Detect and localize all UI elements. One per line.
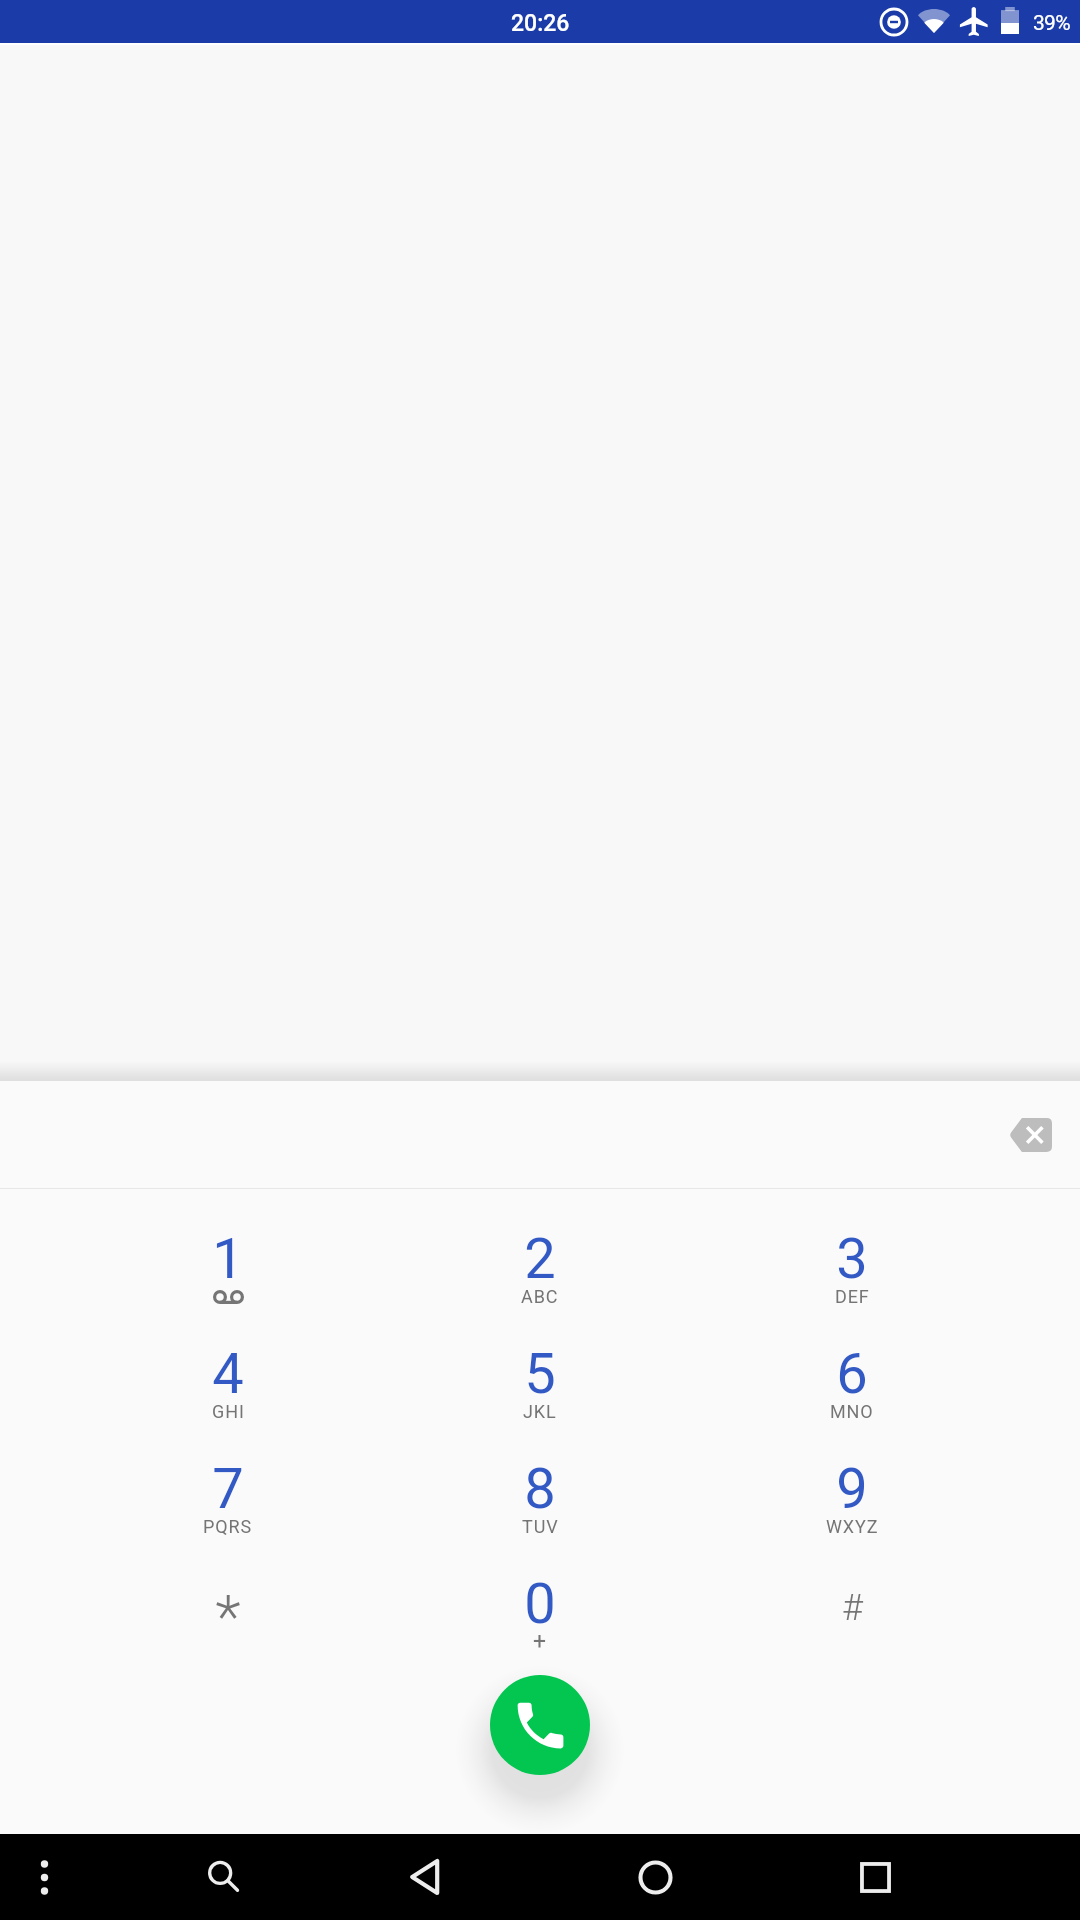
staticText: 6 [836, 1341, 868, 1407]
staticText: 8 [524, 1456, 556, 1522]
staticText: 2 [524, 1226, 556, 1292]
staticText: ABC [521, 1286, 559, 1307]
staticText: DEF [835, 1286, 870, 1307]
button[interactable]: 4 [72, 1304, 384, 1419]
button[interactable]: Call [490, 1675, 590, 1775]
staticText: 1 [212, 1226, 244, 1292]
staticText: 4 [212, 1341, 244, 1407]
button[interactable]: 2 [384, 1189, 696, 1304]
staticText: 7 [212, 1456, 244, 1522]
staticText: MNO [830, 1401, 874, 1422]
staticText: 20:26 [511, 10, 570, 37]
button[interactable]: 0 [384, 1534, 696, 1649]
button[interactable]: Recents [832, 1834, 918, 1920]
staticText: + [533, 1628, 547, 1655]
button[interactable]: * [72, 1534, 384, 1649]
button[interactable]: Backspace [986, 1091, 1074, 1179]
button[interactable]: Home [612, 1834, 698, 1920]
staticText: * [215, 1582, 241, 1651]
button[interactable]: 7 [72, 1419, 384, 1534]
staticText: GHI [212, 1401, 245, 1422]
button[interactable]: 6 [696, 1304, 1008, 1419]
staticText: # [842, 1587, 863, 1629]
staticText: TUV [522, 1516, 559, 1537]
button[interactable]: 5 [384, 1304, 696, 1419]
button[interactable]: Search [180, 1834, 266, 1920]
staticText: 9 [836, 1456, 868, 1522]
button[interactable]: # [696, 1534, 1008, 1649]
staticText: 3 [836, 1226, 868, 1292]
staticText: WXYZ [826, 1516, 879, 1537]
button[interactable]: 8 [384, 1419, 696, 1534]
staticText: PQRS [203, 1516, 253, 1537]
staticText: 39% [1033, 11, 1070, 36]
staticText: 5 [524, 1341, 556, 1407]
button[interactable]: 3 [696, 1189, 1008, 1304]
staticText: JKL [523, 1401, 557, 1422]
button[interactable]: More options [1, 1834, 87, 1920]
button[interactable]: 1 [72, 1189, 384, 1304]
button[interactable]: 9 [696, 1419, 1008, 1534]
staticText: 0 [524, 1571, 556, 1637]
button[interactable]: Back [383, 1834, 469, 1920]
